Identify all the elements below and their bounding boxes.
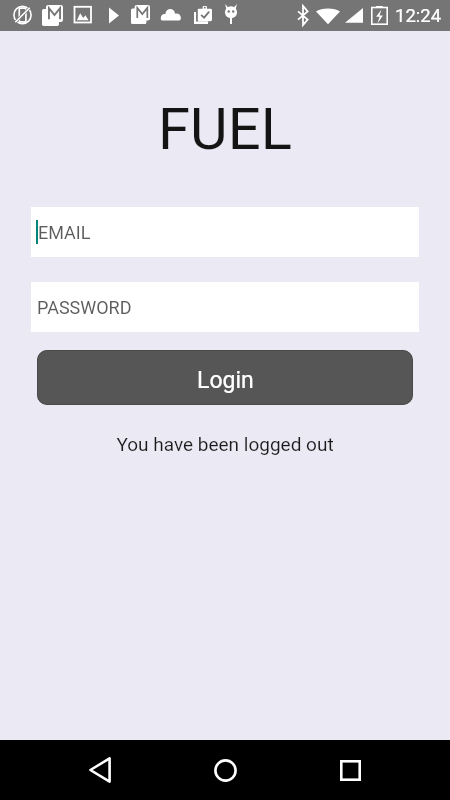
button[interactable]: Login	[37, 350, 413, 405]
staticText: Login	[197, 367, 254, 394]
button[interactable]: PASSWORD	[31, 282, 419, 332]
button[interactable]: Recents	[300, 740, 400, 800]
staticText: FUEL	[0, 95, 450, 163]
staticText: You have been logged out	[0, 433, 450, 455]
staticText: PASSWORD	[37, 297, 132, 318]
staticText: 12:24	[395, 5, 442, 27]
button[interactable]: Back	[50, 740, 150, 800]
button[interactable]: EMAIL	[31, 207, 419, 257]
staticText: EMAIL	[38, 222, 91, 243]
button[interactable]: Home	[175, 740, 275, 800]
